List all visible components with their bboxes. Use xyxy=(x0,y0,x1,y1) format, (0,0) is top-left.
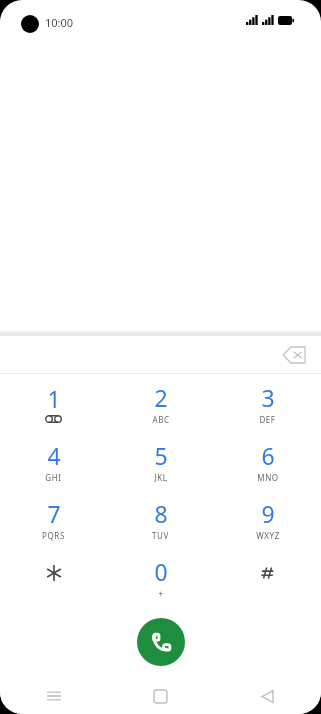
button[interactable]: 4 xyxy=(0,432,107,490)
button[interactable]: 7 xyxy=(0,490,107,548)
button[interactable] xyxy=(214,548,321,606)
staticText: TUV xyxy=(152,530,169,541)
button[interactable]: Backspace xyxy=(277,338,311,372)
button[interactable] xyxy=(0,548,107,606)
staticText: 2 xyxy=(154,382,168,413)
staticText: 9 xyxy=(261,498,275,529)
staticText: + xyxy=(158,588,164,599)
button[interactable]: 1 xyxy=(0,374,107,432)
button[interactable]: 9 xyxy=(214,490,321,548)
staticText: 10:00 xyxy=(45,15,74,30)
button[interactable]: Back xyxy=(214,678,321,714)
button[interactable]: 5 xyxy=(107,432,214,490)
button[interactable]: 8 xyxy=(107,490,214,548)
staticText: MNO xyxy=(257,472,279,483)
staticText: 3 xyxy=(261,382,275,413)
staticText: 1 xyxy=(47,383,61,414)
staticText: ABC xyxy=(152,414,170,425)
staticText: GHI xyxy=(45,472,62,483)
staticText: 8 xyxy=(154,498,168,529)
button[interactable]: Recents xyxy=(0,678,107,714)
staticText: 6 xyxy=(261,440,275,471)
staticText: JKL xyxy=(154,472,168,483)
staticText: 5 xyxy=(154,440,168,471)
staticText: PQRS xyxy=(42,530,65,541)
staticText: WXYZ xyxy=(256,530,280,541)
button[interactable]: 2 xyxy=(107,374,214,432)
button[interactable]: 3 xyxy=(214,374,321,432)
button[interactable]: 0 xyxy=(107,548,214,606)
staticText: 7 xyxy=(47,498,61,529)
button[interactable]: 6 xyxy=(214,432,321,490)
staticText: 0 xyxy=(154,556,168,587)
staticText: 4 xyxy=(47,440,61,471)
staticText: DEF xyxy=(259,414,276,425)
button[interactable]: Call xyxy=(137,618,185,666)
button[interactable]: Home xyxy=(107,678,214,714)
